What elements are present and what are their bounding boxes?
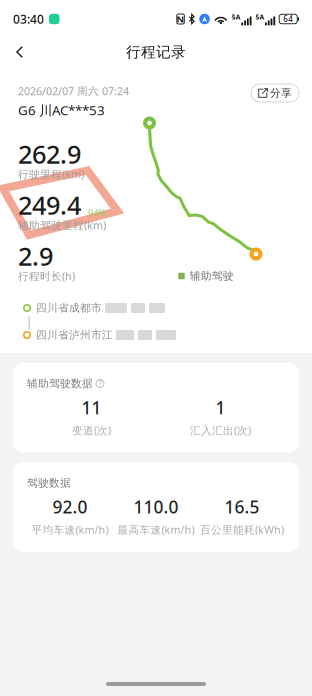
staticText: 5A bbox=[232, 13, 241, 21]
staticText: 2.9 bbox=[18, 239, 53, 273]
staticText: 辅助驾驶数据 bbox=[27, 377, 93, 390]
staticText: 最高车速(km/h) bbox=[117, 522, 194, 537]
staticText: 驾驶数据 bbox=[27, 476, 71, 489]
staticText: 16.5 bbox=[224, 495, 259, 518]
staticText: 行程时长(h) bbox=[18, 269, 75, 283]
staticText: 变道(次) bbox=[72, 423, 111, 437]
staticText: N bbox=[177, 13, 185, 25]
staticText: 110.0 bbox=[133, 495, 178, 518]
staticText: 汇入汇出(次) bbox=[190, 423, 251, 437]
staticText: 辅助驾驶 bbox=[190, 269, 234, 282]
staticText: 平均车速(km/h) bbox=[31, 522, 108, 537]
staticText: 辅助驾驶里程(km) bbox=[18, 218, 106, 232]
staticText: 64 bbox=[283, 14, 293, 24]
staticText: 四川省泸州市江 bbox=[36, 328, 113, 341]
staticText: 行驶里程(km) bbox=[18, 167, 84, 181]
staticText: 11 bbox=[81, 396, 101, 419]
button[interactable]: 返回 bbox=[4, 37, 36, 67]
staticText: 1 bbox=[215, 396, 225, 419]
staticText: ? bbox=[98, 378, 101, 389]
staticText: 行程记录 bbox=[126, 43, 186, 61]
staticText: 249.4 bbox=[18, 188, 81, 222]
staticText: 四川省成都市 bbox=[36, 301, 102, 314]
staticText: 百公里能耗(kWh) bbox=[200, 522, 284, 537]
staticText: 5A bbox=[255, 13, 264, 21]
staticText: G6 川AC***53 bbox=[18, 101, 105, 119]
button[interactable]: 分享 bbox=[251, 84, 299, 102]
staticText: 262.9 bbox=[18, 137, 81, 171]
staticText: 94% bbox=[88, 206, 106, 219]
staticText: 分享 bbox=[270, 86, 292, 99]
staticText: 2026/02/07 周六 07:24 bbox=[18, 84, 129, 98]
staticText: 92.0 bbox=[52, 495, 87, 518]
staticText: 03:40 bbox=[13, 11, 44, 27]
